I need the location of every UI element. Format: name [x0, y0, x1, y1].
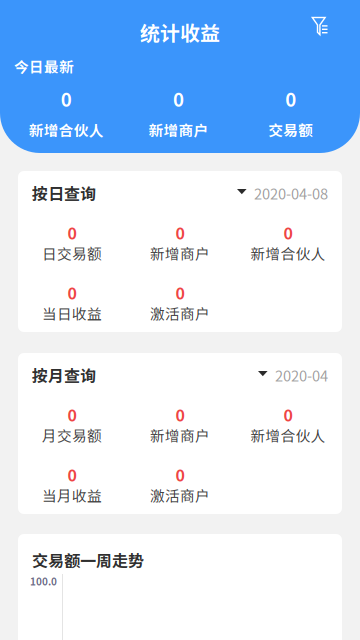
button[interactable]: 2020-04: [258, 365, 328, 385]
button[interactable]: Filter: [301, 9, 339, 54]
staticText: 0: [175, 221, 184, 244]
staticText: 月交易额: [42, 424, 102, 446]
staticText: 今日最新: [14, 55, 74, 77]
staticText: 0: [283, 403, 292, 426]
staticText: 新增商户: [148, 119, 208, 140]
staticText: 0: [175, 281, 184, 304]
staticText: 0: [175, 463, 184, 486]
staticText: 0: [175, 403, 184, 426]
staticText: 新增合伙人: [29, 119, 104, 140]
staticText: 新增商户: [150, 424, 210, 446]
staticText: 交易额一周走势: [32, 548, 144, 572]
staticText: 日交易额: [42, 242, 102, 264]
staticText: 0: [67, 403, 76, 426]
staticText: 100.0: [30, 574, 57, 588]
button[interactable]: 2020-04-08: [237, 183, 328, 203]
staticText: 当日收益: [42, 302, 102, 324]
staticText: 0: [283, 221, 292, 244]
staticText: 0: [285, 85, 296, 112]
staticText: 交易额: [268, 119, 313, 140]
staticText: 0: [67, 463, 76, 486]
staticText: 0: [173, 85, 184, 112]
staticText: 0: [67, 281, 76, 304]
staticText: 新增合伙人: [250, 242, 325, 264]
staticText: 新增合伙人: [250, 424, 325, 446]
staticText: 统计收益: [140, 17, 220, 46]
staticText: 按日查询: [32, 181, 96, 205]
staticText: 0: [61, 85, 72, 112]
staticText: 2020-04-08: [254, 182, 328, 204]
staticText: 激活商户: [150, 484, 210, 506]
staticText: 激活商户: [150, 302, 210, 324]
staticText: 新增商户: [150, 242, 210, 264]
staticText: 2020-04: [275, 364, 328, 386]
staticText: 0: [67, 221, 76, 244]
staticText: 按月查询: [32, 363, 96, 387]
staticText: 当月收益: [42, 484, 102, 506]
